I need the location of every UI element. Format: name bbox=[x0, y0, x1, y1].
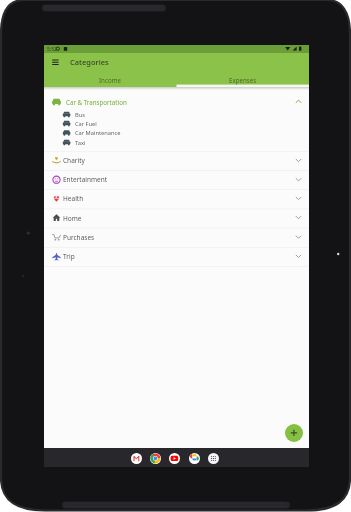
button[interactable]: Trip bbox=[44, 247, 309, 266]
button[interactable] bbox=[169, 453, 180, 464]
button[interactable]: Bus bbox=[44, 110, 309, 119]
button[interactable]: Car & Transportation bbox=[44, 92, 309, 111]
staticText: Home bbox=[63, 214, 82, 223]
staticText: Income bbox=[99, 76, 121, 84]
staticText: 5:52 bbox=[47, 46, 57, 53]
staticText: Car & Transportation bbox=[66, 98, 127, 106]
button[interactable] bbox=[150, 453, 161, 464]
button[interactable] bbox=[208, 453, 219, 464]
staticText: Trip bbox=[63, 252, 75, 261]
button[interactable]: Car Maintenance bbox=[44, 128, 309, 137]
staticText: Expenses bbox=[229, 76, 257, 84]
button[interactable]: Home bbox=[44, 209, 309, 228]
button[interactable] bbox=[189, 453, 200, 464]
button[interactable]: Car Fuel bbox=[44, 119, 309, 128]
button[interactable] bbox=[285, 424, 303, 442]
button[interactable]: Expenses bbox=[176, 73, 309, 87]
staticText: Entertainment bbox=[63, 175, 108, 184]
staticText: Charity bbox=[63, 156, 85, 165]
staticText: Car Maintenance bbox=[75, 129, 121, 137]
button[interactable]: Purchases bbox=[44, 228, 309, 247]
button[interactable] bbox=[47, 55, 64, 72]
button[interactable]: Taxi bbox=[44, 138, 309, 147]
button[interactable] bbox=[131, 453, 142, 464]
staticText: Purchases bbox=[63, 233, 95, 242]
button[interactable]: Charity bbox=[44, 151, 309, 170]
button[interactable]: Health bbox=[44, 189, 309, 208]
staticText: Taxi bbox=[75, 139, 86, 147]
staticText: Bus bbox=[75, 111, 85, 119]
staticText: Health bbox=[63, 194, 84, 203]
button[interactable]: Entertainment bbox=[44, 170, 309, 189]
button[interactable]: Income bbox=[44, 73, 176, 87]
staticText: Car Fuel bbox=[75, 120, 97, 128]
staticText: Categories bbox=[70, 57, 109, 67]
